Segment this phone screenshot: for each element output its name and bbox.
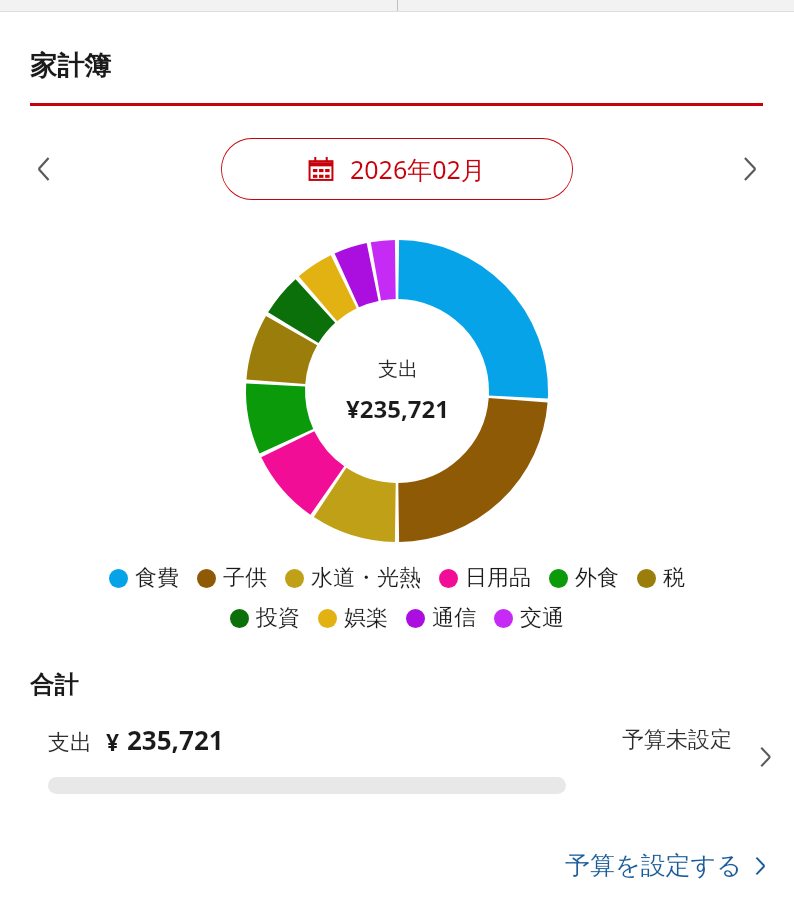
staticText: 予算未設定 — [622, 726, 732, 754]
staticText: 水道・光熱 — [311, 564, 421, 592]
button[interactable]: 娯楽 — [318, 604, 388, 632]
staticText: 娯楽 — [344, 604, 388, 632]
staticText: 支出 — [378, 357, 418, 382]
staticText: 家計簿 — [30, 49, 111, 83]
button[interactable]: 2026年02月 — [221, 138, 573, 200]
button[interactable]: 予算を設定する — [559, 846, 774, 885]
button[interactable]: 投資 — [230, 604, 300, 632]
button[interactable]: 前の月 — [0, 136, 94, 202]
staticText: 子供 — [223, 564, 267, 592]
staticText: ¥235,721 — [346, 392, 449, 425]
button[interactable]: 交通 — [494, 604, 564, 632]
button[interactable]: 食費 — [109, 564, 179, 592]
button[interactable]: 税 — [637, 564, 685, 592]
button[interactable]: 支出 — [0, 722, 794, 818]
staticText: 2026年02月 — [350, 152, 486, 186]
staticText: 交通 — [520, 604, 564, 632]
staticText: 投資 — [256, 604, 300, 632]
staticText: 合計 — [30, 670, 78, 700]
button[interactable]: 外食 — [549, 564, 619, 592]
staticText: 日用品 — [465, 564, 531, 592]
staticText: 税 — [663, 564, 685, 592]
staticText: 235,721 — [127, 722, 224, 757]
button[interactable]: 通信 — [406, 604, 476, 632]
staticText: 支出 — [48, 729, 92, 757]
staticText: 外食 — [575, 564, 619, 592]
staticText: ¥ — [106, 726, 120, 757]
staticText: 予算を設定する — [565, 850, 742, 881]
button[interactable]: 水道・光熱 — [285, 564, 421, 592]
button[interactable]: 次の月 — [700, 136, 794, 202]
staticText: 通信 — [432, 604, 476, 632]
staticText: 食費 — [135, 564, 179, 592]
button[interactable]: 子供 — [197, 564, 267, 592]
button[interactable]: 日用品 — [439, 564, 531, 592]
